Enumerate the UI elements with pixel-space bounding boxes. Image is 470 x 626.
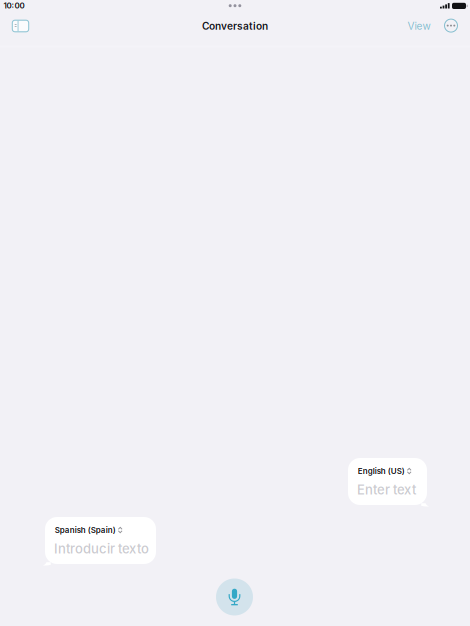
staticText: View bbox=[407, 20, 430, 32]
staticText: English (US) bbox=[358, 466, 405, 476]
staticText: Enter text bbox=[357, 482, 416, 498]
button[interactable]: Record bbox=[212, 575, 256, 619]
staticText: Introducir texto bbox=[54, 541, 149, 557]
staticText: Conversation bbox=[202, 20, 268, 32]
staticText: Spanish (Spain) bbox=[55, 525, 116, 535]
button[interactable]: View bbox=[403, 13, 435, 39]
button[interactable]: More bbox=[438, 13, 464, 39]
button[interactable]: Show Sidebar bbox=[5, 13, 35, 39]
staticText: 10:00 bbox=[3, 1, 24, 10]
